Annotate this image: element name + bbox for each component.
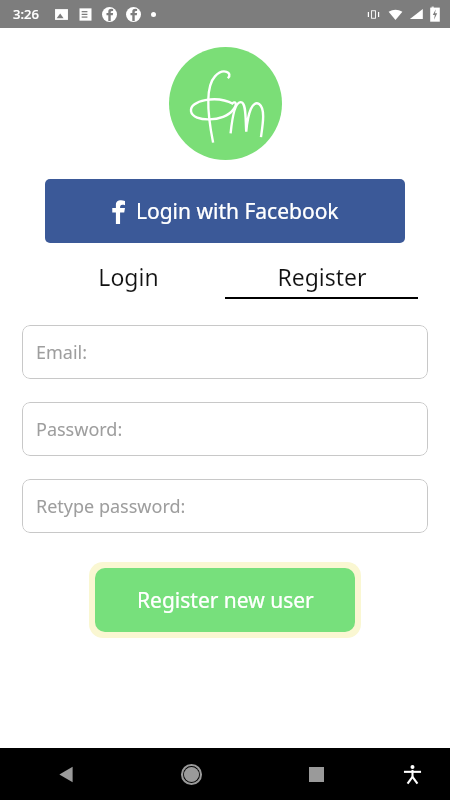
staticText: Email: <box>36 340 88 365</box>
button[interactable]: Password: <box>22 402 428 456</box>
button[interactable]: Recent apps <box>292 750 340 798</box>
staticText: Retype password: <box>36 494 186 519</box>
button[interactable]: Back <box>42 750 90 798</box>
staticText: Password: <box>36 417 123 442</box>
button[interactable]: Login with Facebook <box>45 179 405 243</box>
staticText: 3:26 <box>13 5 39 23</box>
button[interactable]: Register <box>225 261 418 299</box>
button[interactable]: Login <box>32 261 225 299</box>
staticText: Login <box>98 261 159 292</box>
staticText: Login with Facebook <box>136 197 339 226</box>
button[interactable]: Register new user <box>95 568 355 632</box>
staticText: Register new user <box>137 586 314 615</box>
button[interactable]: Accessibility <box>388 750 436 798</box>
button[interactable]: Retype password: <box>22 479 428 533</box>
button[interactable]: Home <box>167 750 215 798</box>
staticText: Register <box>277 261 367 292</box>
button[interactable]: Email: <box>22 325 428 379</box>
